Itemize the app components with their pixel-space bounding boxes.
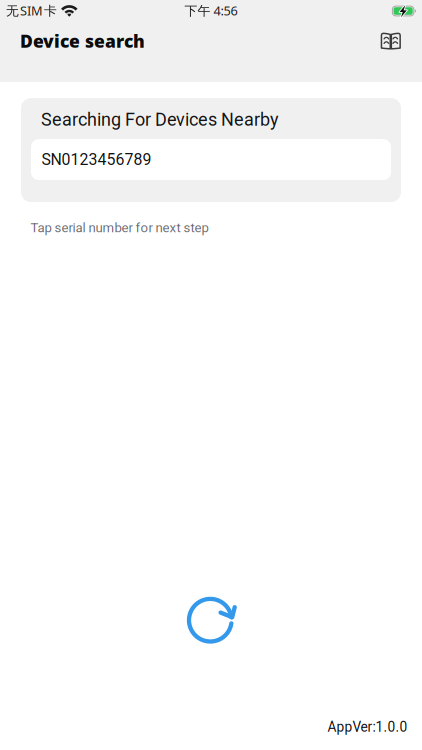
- staticText: Searching For Devices Nearby: [41, 109, 279, 130]
- button[interactable]: User manual: [373, 25, 409, 57]
- staticText: 无 SIM 卡: [6, 2, 57, 19]
- staticText: SN0123456789: [41, 150, 151, 169]
- staticText: Tap serial number for next step: [30, 220, 208, 236]
- staticText: Device search: [20, 29, 145, 53]
- staticText: 下午 4:56: [184, 2, 237, 19]
- button[interactable]: SN0123456789: [31, 139, 391, 180]
- staticText: AppVer:1.0.0: [327, 719, 407, 735]
